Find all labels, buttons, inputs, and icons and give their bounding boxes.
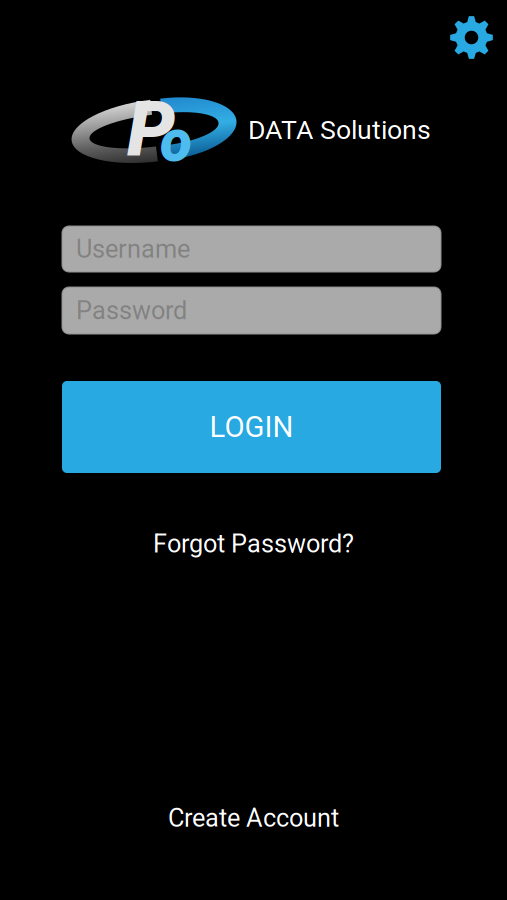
button[interactable]: Username [62,226,441,272]
button[interactable]: LOGIN [62,381,441,473]
staticText: Password [76,296,187,325]
staticText: Username [76,234,190,264]
staticText: DATA Solutions [248,114,431,146]
staticText: o [160,107,192,175]
staticText: Create Account [168,803,339,833]
staticText: Forgot Password? [153,529,354,559]
staticText: P [127,84,175,174]
staticText: LOGIN [209,410,293,444]
button[interactable]: Forgot Password? [141,524,366,564]
button[interactable]: Create Account [156,798,351,838]
button[interactable]: Settings [443,9,500,66]
button[interactable]: Password [62,287,441,334]
